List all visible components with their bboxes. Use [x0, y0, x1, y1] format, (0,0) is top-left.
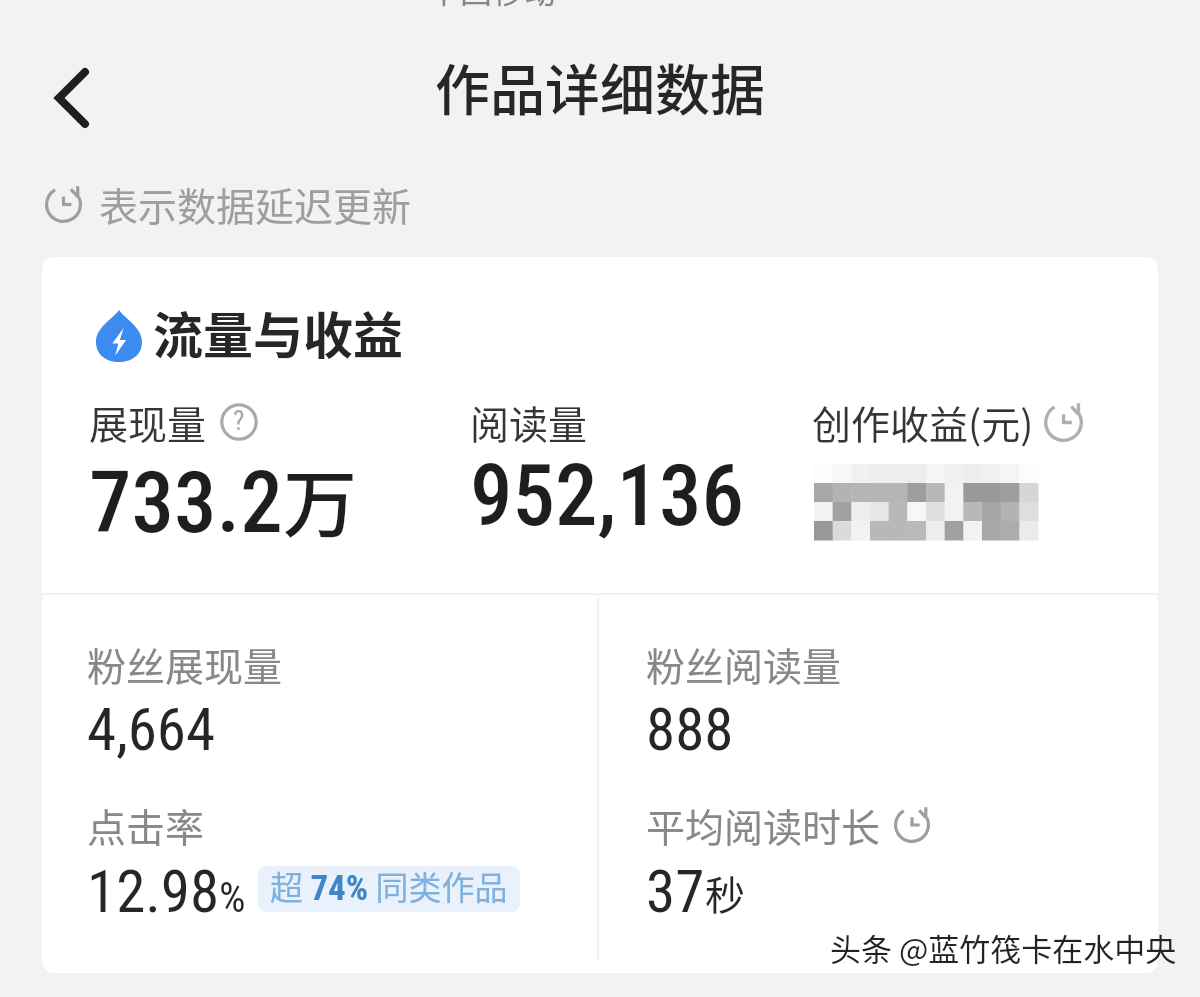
staticText: 中国移动	[428, 0, 557, 12]
staticText: 秒	[705, 864, 745, 922]
button[interactable]: 超 74% 同类作品	[258, 866, 520, 912]
staticText: 点击率	[87, 797, 205, 853]
button[interactable]: 表示数据延迟更新	[45, 176, 412, 232]
staticText: 952,136	[470, 446, 744, 546]
staticText: 作品详细数据	[435, 46, 766, 126]
button[interactable]: Back	[27, 62, 103, 138]
staticText: 头条 @蓝竹筏卡在水中央	[830, 925, 1177, 970]
staticText: 万	[283, 445, 357, 552]
staticText: 888	[646, 695, 734, 764]
button[interactable]	[627, 617, 1147, 747]
staticText: ?	[233, 405, 245, 437]
staticText: 733.2	[89, 453, 283, 553]
staticText: 粉丝阅读量	[646, 636, 842, 692]
button[interactable]: 展现量	[89, 394, 258, 450]
staticText: 超 74% 同类作品	[270, 866, 508, 908]
button[interactable]: What is impressions	[220, 403, 258, 441]
staticText: 展现量	[89, 394, 207, 450]
staticText: 粉丝展现量	[87, 636, 283, 692]
staticText: 流量与收益	[153, 296, 403, 368]
button[interactable]: 平均阅读时长	[646, 797, 930, 853]
staticText: 表示数据延迟更新	[99, 176, 412, 232]
staticText: 创作收益(元)	[812, 394, 1034, 450]
staticText: 12.98%	[87, 857, 246, 926]
button[interactable]: 创作收益(元)	[812, 394, 1083, 450]
staticText: 平均阅读时长	[646, 797, 881, 853]
button[interactable]: 阅读量	[470, 394, 588, 450]
staticText: 4,664	[87, 695, 216, 764]
button[interactable]	[70, 617, 590, 747]
staticText: 37	[646, 857, 705, 926]
staticText: 阅读量	[470, 394, 588, 450]
